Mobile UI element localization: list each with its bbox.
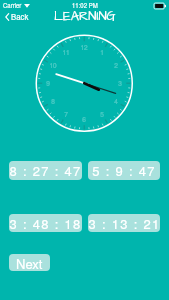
staticText: 6 bbox=[82, 115, 86, 124]
button[interactable]: 3 : 13 : 21 bbox=[88, 214, 160, 232]
staticText: 7 bbox=[64, 110, 68, 119]
button[interactable]: Next bbox=[9, 254, 50, 271]
staticText: Back bbox=[11, 11, 29, 22]
staticText: 12 bbox=[80, 43, 88, 52]
staticText: Carrier bbox=[3, 1, 22, 10]
button[interactable]: 8 : 27 : 47 bbox=[9, 161, 82, 180]
button[interactable]: 3 : 48 : 18 bbox=[9, 214, 82, 232]
staticText: 10 bbox=[49, 61, 57, 70]
button[interactable]: 5 : 9 : 47 bbox=[88, 161, 160, 180]
staticText: 5 : 9 : 47 bbox=[92, 161, 156, 180]
staticText: Next bbox=[16, 254, 43, 271]
staticText: 4 bbox=[114, 97, 118, 106]
staticText: 5 bbox=[100, 110, 104, 119]
staticText: 3 : 48 : 18 bbox=[9, 214, 82, 232]
staticText: 3 : 13 : 21 bbox=[88, 214, 160, 232]
staticText: 8 bbox=[51, 97, 55, 106]
staticText: LEARNING bbox=[54, 7, 116, 25]
staticText: 3 bbox=[118, 79, 122, 88]
staticText: 2 bbox=[114, 61, 118, 70]
staticText: 9 bbox=[46, 79, 50, 88]
staticText: 8 : 27 : 47 bbox=[9, 161, 82, 180]
staticText: 1 bbox=[100, 48, 104, 57]
staticText: 11 bbox=[62, 48, 70, 57]
button[interactable]: Back bbox=[0, 9, 35, 24]
staticText: 11:02 PM bbox=[72, 1, 98, 10]
